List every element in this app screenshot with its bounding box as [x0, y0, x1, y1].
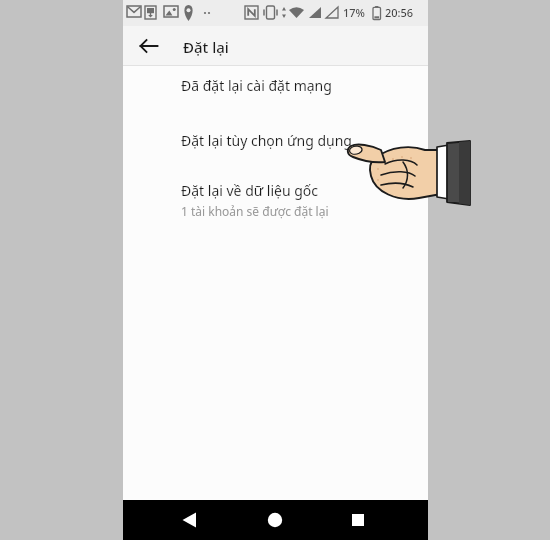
button[interactable]: Back — [173, 500, 207, 540]
button[interactable]: Home — [258, 500, 292, 540]
staticText: Đặt lại tùy chọn ứng dụng — [181, 131, 352, 150]
staticText: Đặt lại về dữ liệu gốc — [181, 181, 319, 200]
button[interactable]: Đặt lại về dữ liệu gốc — [181, 179, 428, 221]
button[interactable]: Recent apps — [341, 500, 375, 540]
staticText: 17% — [343, 5, 365, 20]
staticText: Đặt lại — [183, 37, 229, 57]
staticText: 1 tài khoản sẽ được đặt lại — [181, 203, 329, 219]
button[interactable]: Đặt lại tùy chọn ứng dụng — [181, 129, 428, 152]
button[interactable]: Back — [133, 30, 165, 62]
button[interactable]: Đã đặt lại cài đặt mạng — [181, 74, 428, 97]
staticText: Đã đặt lại cài đặt mạng — [181, 76, 332, 95]
staticText: 20:56 — [385, 5, 414, 20]
